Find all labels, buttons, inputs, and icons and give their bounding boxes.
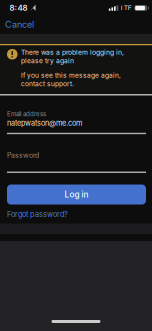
staticText: There was a problem logging in,: [21, 48, 124, 56]
staticText: If you see this message again,: [21, 71, 121, 79]
staticText: Log in: [64, 190, 88, 200]
button[interactable]: Cancel: [5, 19, 34, 30]
staticText: contact support.: [21, 80, 74, 88]
staticText: natepwatson@me.com: [7, 119, 82, 128]
button[interactable]: Email address field: [7, 110, 146, 134]
staticText: Forgot password?: [7, 210, 68, 219]
button[interactable]: Password field: [7, 151, 146, 173]
staticText: Password: [7, 151, 39, 159]
staticText: 8:48: [9, 3, 27, 13]
staticText: Cancel: [5, 19, 34, 30]
staticText: LTE: [121, 4, 132, 12]
button[interactable]: Log in: [7, 185, 146, 205]
staticText: please try again: [21, 57, 74, 65]
button[interactable]: Forgot password?: [7, 210, 68, 219]
staticText: Email address: [7, 110, 46, 118]
